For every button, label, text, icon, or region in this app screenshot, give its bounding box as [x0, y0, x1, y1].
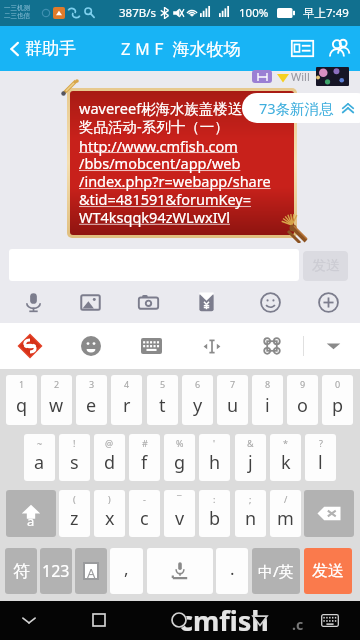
button[interactable]: Avatar [316, 67, 349, 86]
button[interactable]: Symbols [5, 548, 37, 594]
button[interactable]: Move cursor [189, 323, 235, 369]
button[interactable]: Settings [249, 323, 295, 369]
button[interactable]: 1 [6, 375, 37, 425]
staticText: 2 [54, 378, 60, 390]
button[interactable]: Group card [285, 26, 320, 71]
button[interactable]: 73条新消息 [242, 93, 360, 123]
staticText: i [265, 393, 270, 418]
staticText: http://www.cmfish.com /bbs/mobcent/app/w… [79, 136, 271, 227]
button[interactable]: * [270, 434, 301, 481]
button[interactable]: ' [199, 434, 230, 481]
button[interactable]: Voice [16, 285, 50, 319]
staticText: f [141, 450, 148, 475]
button[interactable]: 0 [322, 375, 353, 425]
staticText: w [49, 393, 64, 418]
staticText: j [248, 450, 253, 475]
staticText: 7 [230, 378, 236, 390]
button[interactable]: 9 [287, 375, 318, 425]
staticText: t [159, 393, 166, 418]
staticText: Will [291, 69, 310, 84]
button[interactable]: Hide keyboard [10, 601, 48, 639]
button[interactable]: Language [75, 548, 107, 594]
staticText: 发送 [312, 561, 344, 581]
staticText: a [34, 450, 45, 475]
button[interactable]: : [199, 490, 230, 537]
button[interactable]: ) [94, 490, 125, 537]
button[interactable]: wavereef彬海水族盖楼送 奖品活动-系列十（一） [70, 91, 294, 235]
button[interactable]: . [216, 548, 248, 594]
button[interactable]: 发送 [304, 548, 352, 594]
button[interactable]: Camera [131, 285, 165, 319]
button[interactable]: ; [235, 490, 266, 537]
staticText: 早上7:49 [303, 5, 349, 21]
staticText: a [27, 512, 35, 530]
button[interactable]: 5 [147, 375, 178, 425]
button[interactable]: 8 [252, 375, 283, 425]
button[interactable]: 2 [41, 375, 72, 425]
button[interactable]: - [129, 490, 160, 537]
staticText: 4 [124, 378, 130, 390]
button[interactable]: Home [160, 601, 198, 639]
staticText: ! [73, 437, 76, 449]
staticText: y [193, 393, 203, 418]
staticText: - [143, 493, 146, 505]
staticText: 387B/s [119, 5, 156, 21]
staticText: @ [105, 437, 114, 449]
staticText: o [297, 393, 308, 418]
button[interactable]: Shift [6, 490, 56, 537]
staticText: . [230, 557, 235, 580]
staticText: ' [213, 437, 216, 449]
staticText: ? [319, 437, 323, 449]
staticText: c [140, 506, 149, 531]
button[interactable]: Recents [80, 601, 118, 639]
button[interactable]: Sogou input [7, 323, 53, 369]
button[interactable]: # [129, 434, 160, 481]
button[interactable]: More [311, 285, 345, 319]
staticText: 0 [335, 378, 341, 390]
staticText: r [123, 393, 131, 418]
staticText: s [70, 450, 79, 475]
button[interactable]: Backspace [304, 490, 354, 537]
button[interactable]: 群助手 [0, 26, 86, 71]
button[interactable]: ~ [24, 434, 55, 481]
button[interactable]: Red packet [189, 285, 223, 319]
staticText: m [277, 506, 294, 531]
button[interactable]: Back [241, 601, 279, 639]
button[interactable]: Members [320, 26, 360, 71]
button[interactable]: 7 [217, 375, 248, 425]
button[interactable]: / [270, 490, 301, 537]
button[interactable]: Emoji [253, 285, 287, 319]
button[interactable]: 4 [111, 375, 142, 425]
staticText: x [105, 506, 115, 531]
staticText: .c [292, 615, 304, 634]
button[interactable]: % [164, 434, 195, 481]
button[interactable]: Numbers [40, 548, 72, 594]
staticText: & [247, 437, 254, 449]
button[interactable]: Space [147, 548, 213, 594]
button[interactable]: ( [59, 490, 90, 537]
button[interactable]: @ [94, 434, 125, 481]
button[interactable]: 6 [182, 375, 213, 425]
button[interactable]: ? [305, 434, 336, 481]
staticText: ＺＭＦ 海水牧场 [117, 37, 241, 60]
staticText: 一三机测 二三也信 [4, 4, 30, 20]
button[interactable]: Chinese English [252, 548, 300, 594]
button[interactable]: Hide keyboard [310, 323, 356, 369]
staticText: ; [249, 493, 252, 505]
button[interactable]: ¯ [164, 490, 195, 537]
button[interactable]: 发送 [303, 251, 348, 281]
staticText: q [16, 393, 28, 418]
button[interactable]: Switch keyboard [311, 601, 349, 639]
button[interactable]: Emoji panel [68, 323, 114, 369]
staticText: 5 [160, 378, 166, 390]
button[interactable]: 3 [76, 375, 107, 425]
button[interactable]: ! [59, 434, 90, 481]
staticText: # [142, 437, 148, 449]
button[interactable]: Gallery [73, 285, 107, 319]
button[interactable]: , [110, 548, 143, 594]
staticText: 123 [42, 560, 70, 582]
staticText: , [124, 557, 129, 580]
button[interactable]: & [235, 434, 266, 481]
button[interactable]: Keyboard layout [128, 323, 174, 369]
